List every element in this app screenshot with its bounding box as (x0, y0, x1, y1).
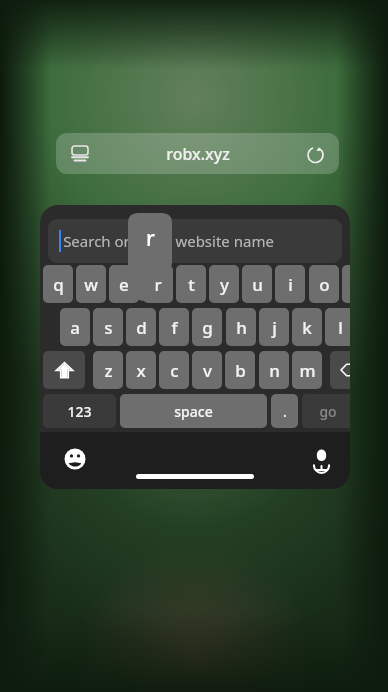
staticText: m (299, 359, 316, 382)
button[interactable]: Emoji (60, 444, 90, 474)
staticText: t (188, 273, 195, 296)
staticText: go (319, 402, 337, 421)
button[interactable]: Search or enter website name (48, 219, 342, 263)
staticText: c (170, 359, 179, 382)
staticText: f (171, 316, 178, 339)
staticText: l (338, 316, 343, 339)
button[interactable]: 123 (43, 394, 116, 428)
button[interactable] (43, 351, 85, 389)
button[interactable]: k (292, 308, 322, 346)
button[interactable]: h (226, 308, 256, 346)
button[interactable]: Reader view (66, 140, 94, 168)
button[interactable]: r (143, 265, 173, 303)
staticText: 123 (67, 402, 92, 421)
staticText: s (104, 316, 113, 339)
button[interactable]: d (126, 308, 156, 346)
staticText: g (202, 316, 213, 339)
staticText: robx.xyz (166, 143, 230, 165)
staticText: u (252, 273, 263, 296)
staticText: d (136, 316, 147, 339)
button[interactable]: n (259, 351, 289, 389)
staticText: . (283, 402, 287, 421)
staticText: v (203, 359, 212, 382)
staticText: x (136, 359, 146, 382)
button[interactable]: u (242, 265, 272, 303)
staticText: y (220, 273, 229, 296)
button[interactable]: go (302, 394, 350, 428)
button[interactable]: g (192, 308, 222, 346)
button[interactable]: l (325, 308, 350, 346)
button[interactable]: y (209, 265, 239, 303)
button[interactable]: Dictate (306, 444, 336, 474)
button[interactable]: Reader view (56, 133, 339, 174)
button[interactable]: o (309, 265, 339, 303)
staticText: j (272, 316, 277, 339)
button[interactable]: w (76, 265, 106, 303)
button[interactable] (330, 351, 350, 389)
staticText: h (236, 316, 247, 339)
button[interactable]: e (109, 265, 139, 303)
button[interactable]: q (43, 265, 73, 303)
button[interactable]: i (275, 265, 305, 303)
button[interactable]: s (93, 308, 123, 346)
button[interactable]: j (259, 308, 289, 346)
button[interactable]: p (342, 265, 350, 303)
button[interactable]: . (271, 394, 298, 428)
staticText: a (70, 316, 80, 339)
button[interactable]: t (176, 265, 206, 303)
staticText: k (302, 316, 312, 339)
staticText: q (53, 273, 64, 296)
button[interactable]: v (192, 351, 222, 389)
button[interactable]: x (126, 351, 156, 389)
staticText: e (119, 273, 129, 296)
staticText: r (146, 224, 155, 253)
staticText: r (154, 273, 162, 296)
button[interactable]: a (60, 308, 90, 346)
staticText: Search or enter website name (63, 231, 274, 251)
button[interactable]: c (159, 351, 189, 389)
button[interactable]: f (159, 308, 189, 346)
staticText: o (319, 273, 330, 296)
button[interactable]: z (93, 351, 123, 389)
staticText: i (288, 273, 293, 296)
staticText: space (174, 402, 213, 421)
button[interactable]: m (292, 351, 322, 389)
staticText: w (84, 273, 98, 296)
staticText: b (235, 359, 246, 382)
staticText: z (104, 359, 113, 382)
button[interactable]: Reload (301, 140, 329, 168)
staticText: n (269, 359, 280, 382)
button[interactable]: space (120, 394, 267, 428)
button[interactable]: b (225, 351, 255, 389)
